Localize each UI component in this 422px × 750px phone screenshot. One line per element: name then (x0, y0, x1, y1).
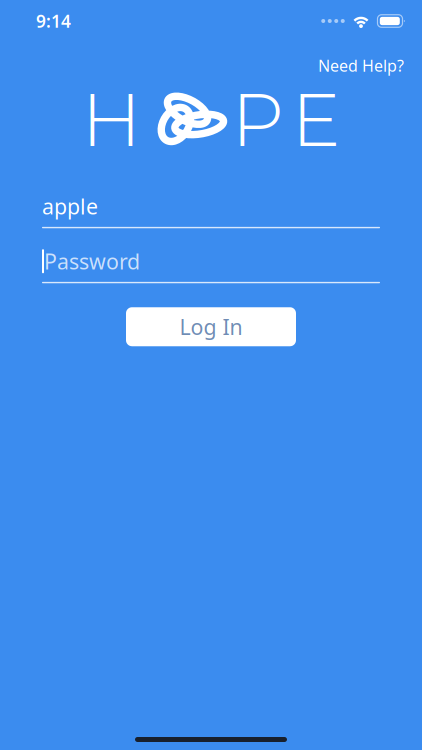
staticText: E (291, 75, 340, 164)
staticText: P (231, 75, 283, 164)
staticText: apple (42, 192, 98, 220)
staticText: Need Help? (318, 55, 404, 76)
staticText: H (81, 75, 141, 164)
staticText: 9:14 (36, 9, 71, 32)
button[interactable]: Log In (126, 307, 296, 346)
staticText: Password (44, 247, 140, 275)
staticText: Log In (179, 313, 242, 341)
button[interactable]: Need Help? (310, 50, 412, 81)
